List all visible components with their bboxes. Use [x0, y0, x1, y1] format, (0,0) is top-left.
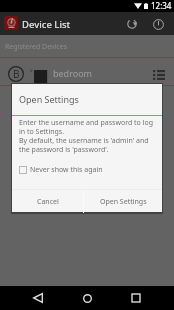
- button[interactable]: Power: [150, 16, 166, 32]
- staticText: Open Settings: [19, 93, 79, 105]
- button[interactable]: Cancel: [12, 190, 83, 213]
- button[interactable]: Recents: [125, 287, 147, 309]
- button[interactable]: Never show this again: [19, 165, 103, 175]
- button[interactable]: Refresh: [124, 16, 140, 32]
- staticText: Open Settings: [100, 197, 147, 207]
- staticText: bedroom: [53, 67, 92, 79]
- staticText: Enter the username and password to log i…: [19, 118, 157, 154]
- button[interactable]: Back: [27, 287, 49, 309]
- button[interactable]: Open Settings: [84, 190, 162, 213]
- button[interactable]: Device menu: [151, 67, 167, 83]
- button[interactable]: B: [0, 58, 174, 85]
- staticText: Cancel: [37, 197, 59, 207]
- staticText: Device List: [22, 18, 71, 31]
- button[interactable]: App icon: [4, 16, 18, 30]
- staticText: Registered Devices: [5, 42, 68, 52]
- button[interactable]: Home: [76, 287, 98, 309]
- staticText: 12:34: [151, 0, 172, 11]
- staticText: B: [13, 67, 20, 81]
- staticText: Never show this again: [30, 165, 103, 175]
